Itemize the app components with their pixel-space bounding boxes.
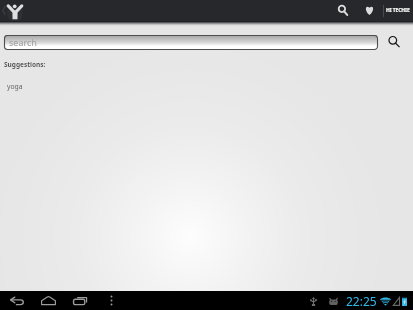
button[interactable]: HI TECHIE	[384, 0, 413, 21]
button[interactable]: Favorites	[353, 0, 379, 21]
staticText: Suggestions:	[4, 60, 46, 69]
button[interactable]: search	[4, 35, 378, 50]
button[interactable]: yoga	[0, 80, 413, 92]
button[interactable]: More options	[96, 291, 126, 310]
button[interactable]: Submit search	[384, 34, 404, 50]
staticText: search	[9, 36, 37, 48]
staticText: yoga	[7, 82, 23, 91]
button[interactable]: Search	[326, 0, 353, 21]
button[interactable]: Home	[32, 291, 64, 310]
staticText: 22:25	[346, 293, 377, 309]
button[interactable]: Recent apps	[64, 291, 96, 310]
staticText: HI TECHIE	[386, 7, 410, 14]
button[interactable]: Back	[1, 291, 32, 310]
button[interactable]: App home, up	[0, 0, 28, 21]
